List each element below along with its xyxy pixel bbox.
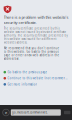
staticText: There is a problem with this website's s…: [3, 15, 68, 25]
staticText: Continue to this website (not recommende…: [7, 76, 67, 80]
button[interactable]: Tabs: [64, 111, 72, 114]
staticText: e: [5, 110, 7, 115]
button[interactable]: Get more information: [3, 81, 68, 87]
button[interactable]: Browser menu: [1, 107, 11, 118]
staticText: go.microsoft.com/fwlink/?L: [12, 111, 47, 114]
button[interactable]: go.microsoft.com/fwlink/?L: [11, 109, 61, 116]
button[interactable]: Go back to the previous page: [3, 69, 68, 75]
staticText: The security certificate presented by th…: [3, 27, 67, 44]
staticText: Get more information: [7, 83, 37, 86]
staticText: We recommend that you don't continue to …: [3, 46, 59, 60]
staticText: Go back to the previous page: [7, 70, 47, 74]
button[interactable]: Continue to this website (not recommende…: [3, 75, 68, 81]
